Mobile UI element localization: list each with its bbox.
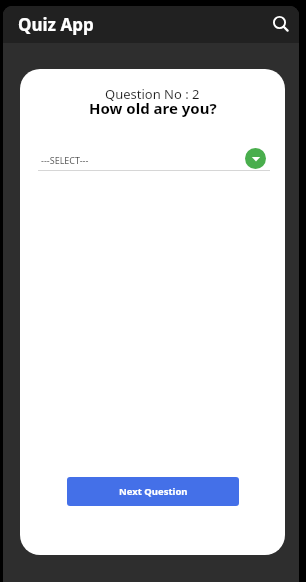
staticText: Quiz App (18, 13, 94, 36)
button[interactable]: Quiz App (3, 6, 299, 43)
staticText: Question No : 2 (105, 85, 200, 103)
button[interactable] (264, 8, 298, 42)
staticText: How old are you? (89, 98, 217, 118)
button[interactable] (245, 148, 266, 169)
staticText: Next Question (119, 485, 188, 498)
button[interactable]: Next Question (67, 477, 239, 506)
staticText: ---SELECT--- (41, 154, 89, 166)
